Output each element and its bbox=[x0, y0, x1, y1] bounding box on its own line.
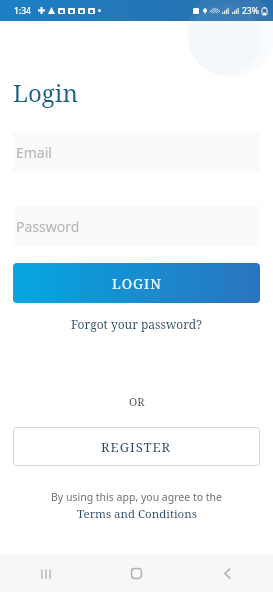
staticText: Email bbox=[16, 143, 52, 162]
button[interactable]: LOGIN bbox=[13, 263, 260, 303]
staticText: REGISTER bbox=[101, 438, 172, 456]
button[interactable]: REGISTER bbox=[13, 427, 260, 466]
button[interactable]: Recent apps bbox=[0, 555, 91, 592]
staticText: By using this app, you agree to the bbox=[13, 490, 260, 504]
staticText: LOGIN bbox=[112, 274, 162, 293]
button[interactable]: Terms and Conditions bbox=[77, 506, 197, 522]
button[interactable]: Password bbox=[13, 206, 260, 246]
staticText: OR bbox=[129, 394, 145, 409]
button[interactable]: Forgot your password? bbox=[67, 312, 206, 336]
staticText: Login bbox=[13, 76, 78, 109]
button[interactable]: Back bbox=[182, 555, 273, 592]
staticText: 1:34 bbox=[14, 5, 31, 17]
button[interactable]: Email bbox=[13, 132, 260, 172]
button[interactable]: Home bbox=[91, 555, 182, 592]
staticText: Password bbox=[16, 217, 80, 236]
staticText: 23% bbox=[242, 5, 259, 17]
